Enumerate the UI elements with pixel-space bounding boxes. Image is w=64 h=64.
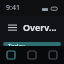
button[interactable]: Stats: [22, 46, 42, 64]
staticText: Today: [8, 42, 25, 46]
staticText: 9:41: [6, 3, 20, 13]
button[interactable]: Today: [3, 42, 61, 46]
button[interactable]: You: [43, 46, 63, 64]
button[interactable]: Menu: [5, 20, 19, 34]
button[interactable]: Home: [1, 46, 21, 64]
staticText: Overview: [23, 21, 59, 33]
